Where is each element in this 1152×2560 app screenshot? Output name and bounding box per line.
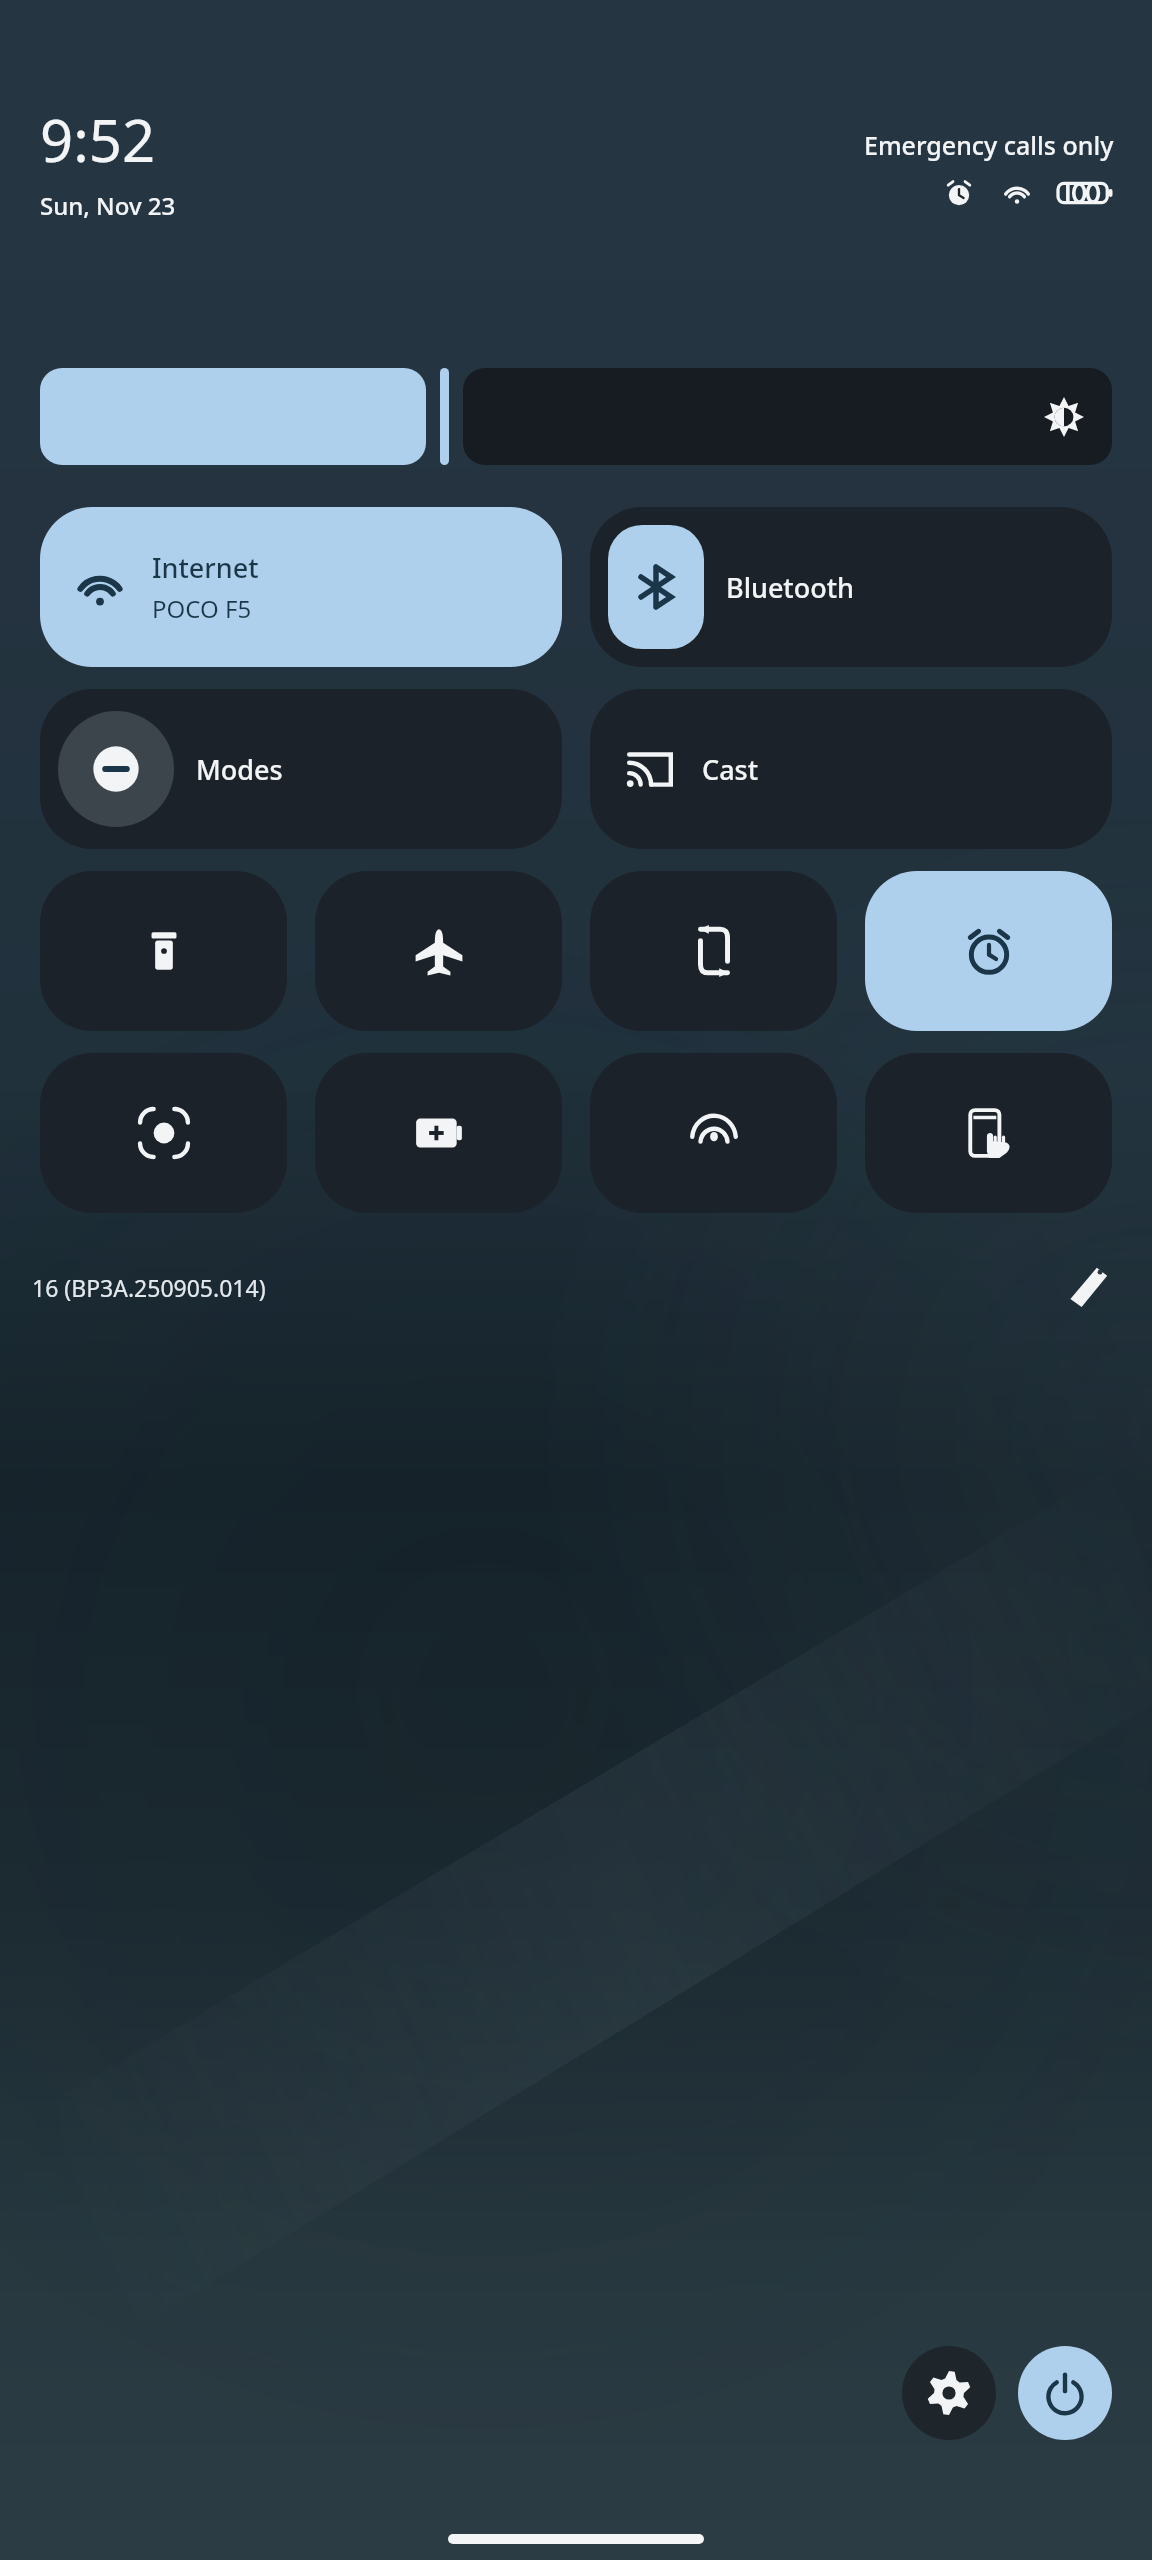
button[interactable] (40, 368, 1112, 465)
staticText: Sun, Nov 23 (40, 189, 176, 222)
button[interactable]: Alarm (865, 871, 1112, 1031)
button[interactable]: Internet (40, 507, 562, 667)
staticText: POCO F5 (152, 592, 252, 625)
button[interactable]: Auto-rotate (590, 871, 837, 1031)
button[interactable]: Settings (902, 2346, 996, 2440)
button[interactable]: One-handed mode (865, 1053, 1112, 1213)
button[interactable]: Cast (590, 689, 1112, 849)
staticText: Bluetooth (726, 569, 854, 606)
button[interactable]: Flashlight (40, 871, 287, 1031)
staticText: 9:52 (40, 100, 156, 179)
button[interactable]: Scan QR code (40, 1053, 287, 1213)
button[interactable]: Edit tiles (1052, 1251, 1124, 1323)
staticText: Emergency calls only (864, 128, 1114, 162)
staticText: Cast (702, 751, 759, 788)
button[interactable]: Bluetooth (590, 507, 1112, 667)
staticText: Internet (152, 549, 259, 586)
button[interactable]: Airplane mode (315, 871, 562, 1031)
button[interactable]: Battery Saver (315, 1053, 562, 1213)
staticText: Modes (196, 751, 283, 788)
button[interactable]: Modes (40, 689, 562, 849)
button[interactable]: Power (1018, 2346, 1112, 2440)
staticText: 16 (BP3A.250905.014) (32, 1272, 266, 1303)
button[interactable]: Hotspot (590, 1053, 837, 1213)
